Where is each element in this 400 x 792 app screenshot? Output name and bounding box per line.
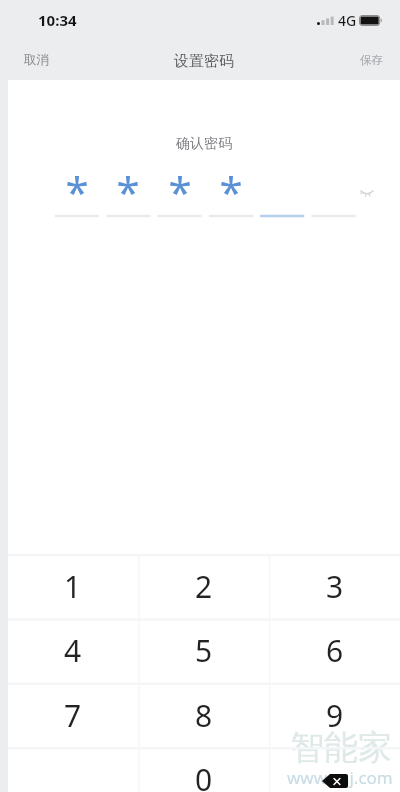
button[interactable]: 2 (138, 554, 269, 618)
staticText: * (55, 163, 99, 219)
staticText: 取消 (24, 52, 49, 68)
other: Delete (322, 774, 348, 788)
button[interactable]: 1 (8, 554, 138, 618)
staticText: 10:34 (38, 10, 77, 30)
button[interactable]: 3 (269, 554, 400, 618)
button[interactable]: 8 (138, 683, 269, 747)
staticText: * (209, 163, 253, 219)
staticText: 设置密码 (174, 52, 234, 71)
staticText: 8 (195, 695, 213, 736)
staticText: 0 (195, 759, 213, 792)
button[interactable]: 0 (138, 747, 269, 792)
staticText: 9 (326, 695, 344, 736)
staticText: 4G (338, 11, 357, 30)
staticText: 智能家 (290, 726, 392, 769)
staticText: 7 (64, 695, 82, 736)
staticText: www.znj.com (287, 766, 393, 789)
staticText: 6 (326, 630, 344, 671)
button[interactable]: 6 (269, 618, 400, 682)
button[interactable]: 7 (8, 683, 138, 747)
button[interactable]: Show password (349, 172, 385, 208)
staticText: 3 (326, 566, 344, 607)
staticText: 1 (64, 566, 82, 607)
button[interactable]: 取消 (8, 40, 63, 80)
staticText: 保存 (360, 53, 383, 67)
button[interactable]: 保存 (346, 40, 400, 80)
staticText: 确认密码 (8, 135, 400, 153)
staticText: * (158, 163, 202, 219)
staticText: * (106, 163, 150, 219)
staticText: 2 (195, 566, 213, 607)
staticText: 4 (64, 630, 82, 671)
button[interactable]: 5 (138, 618, 269, 682)
button[interactable]: 9 (269, 683, 400, 747)
button[interactable]: Delete (269, 747, 400, 792)
staticText: 5 (195, 630, 213, 671)
button[interactable]: 4 (8, 618, 138, 682)
